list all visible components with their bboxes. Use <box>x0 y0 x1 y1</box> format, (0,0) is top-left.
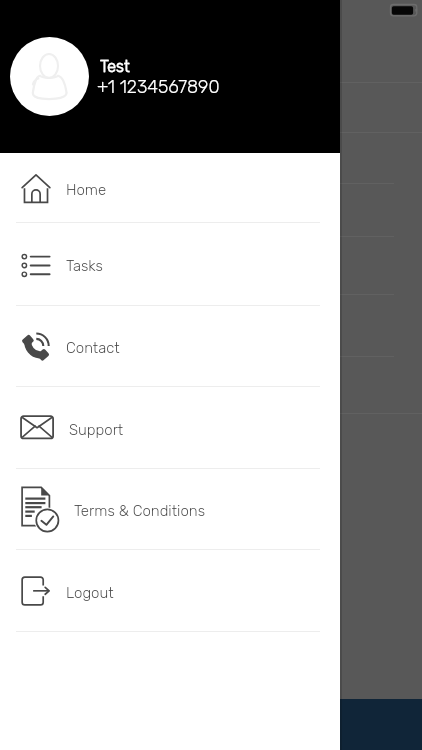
button[interactable]: Terms & Conditions <box>0 469 340 549</box>
button[interactable]: Support <box>0 387 340 468</box>
staticText: Contact <box>66 339 120 357</box>
staticText: Support <box>69 421 124 439</box>
button[interactable]: Tasks <box>0 223 340 305</box>
staticText: Home <box>66 181 107 199</box>
staticText: +1 1234567890 <box>97 76 220 97</box>
other: Battery <box>388 2 420 20</box>
staticText: Tasks <box>66 257 103 275</box>
button[interactable]: Logout <box>0 550 340 631</box>
button[interactable]: Contact <box>0 306 340 386</box>
staticText: Test <box>100 57 130 76</box>
staticText: Logout <box>66 584 114 602</box>
button[interactable]: Home <box>0 153 340 222</box>
staticText: Terms & Conditions <box>74 502 206 520</box>
